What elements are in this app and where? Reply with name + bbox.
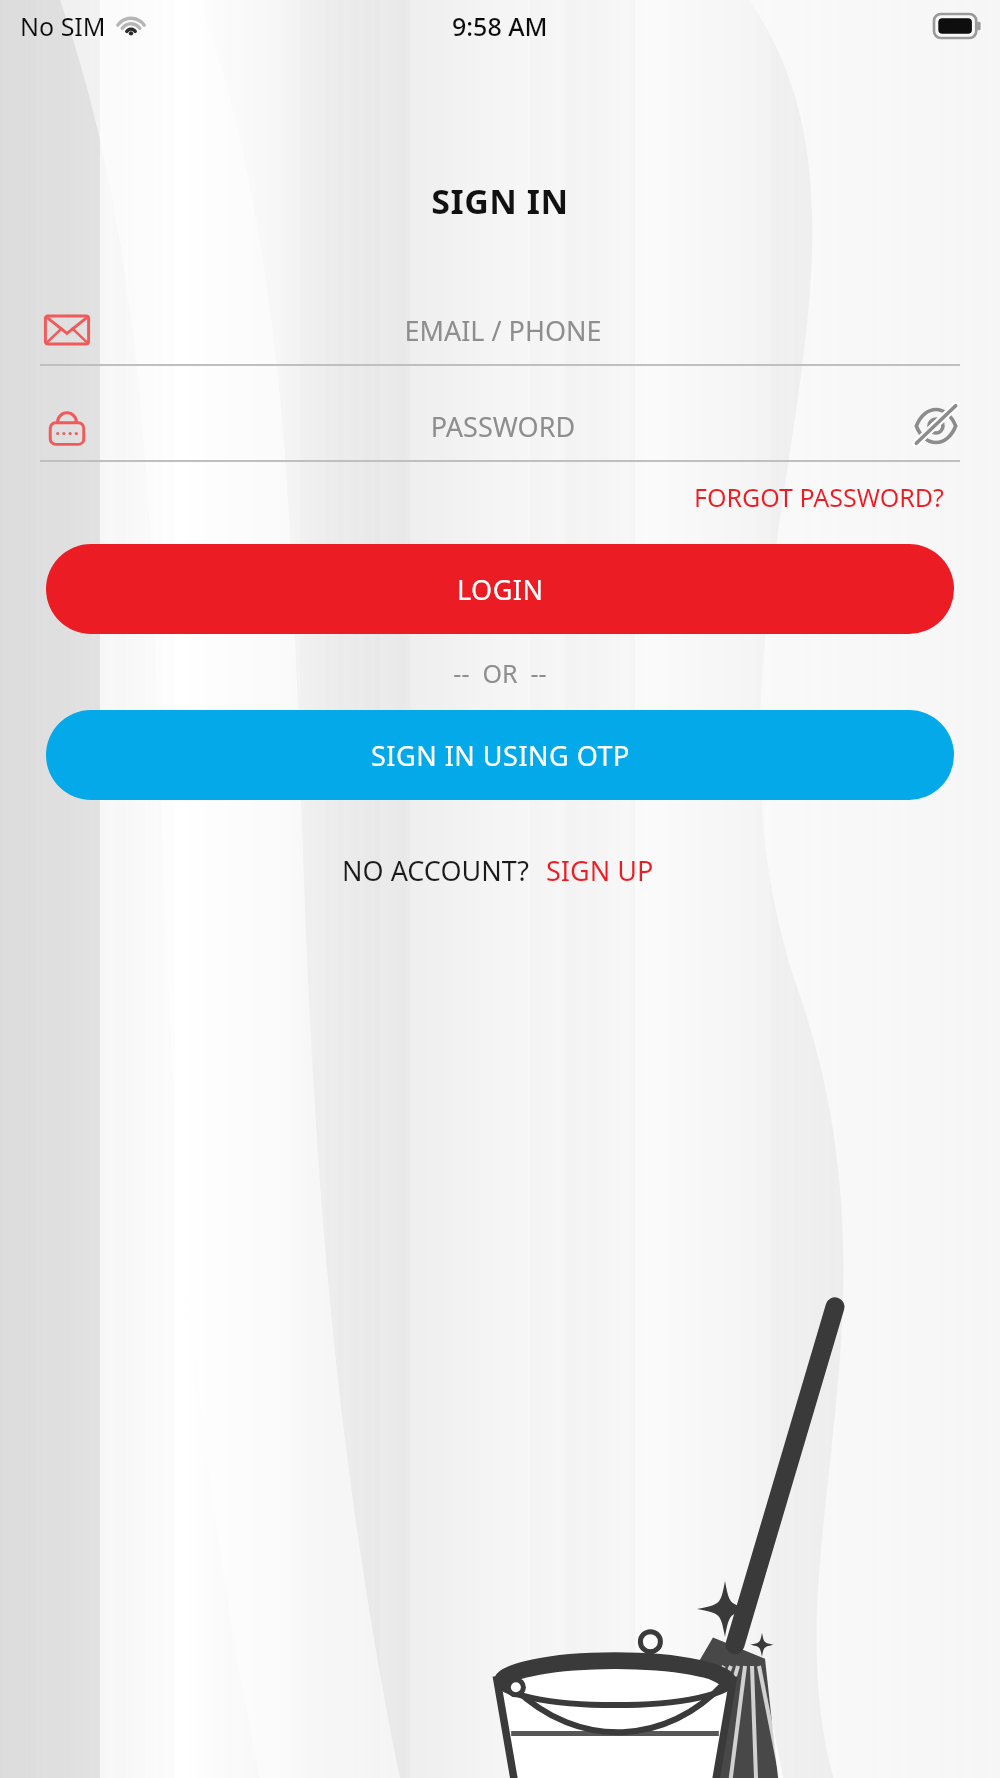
staticText: PASSWORD: [94, 408, 912, 445]
staticText: 9:58 AM: [452, 9, 548, 43]
staticText: NO ACCOUNT?: [342, 852, 530, 889]
button[interactable]: Password: [40, 392, 960, 462]
button[interactable]: SIGN UP: [542, 848, 658, 893]
staticText: No SIM: [20, 9, 106, 43]
staticText: EMAIL / PHONE: [94, 312, 912, 349]
staticText: LOGIN: [457, 571, 544, 608]
other: Password: [40, 399, 94, 453]
button[interactable]: Show password: [912, 402, 960, 450]
button[interactable]: Email: [40, 296, 960, 366]
button[interactable]: SIGN IN USING OTP: [46, 710, 954, 800]
staticText: SIGN UP: [546, 852, 654, 889]
button[interactable]: FORGOT PASSWORD?: [690, 476, 948, 518]
staticText: SIGN IN USING OTP: [371, 737, 630, 774]
staticText: FORGOT PASSWORD?: [694, 480, 944, 514]
button[interactable]: LOGIN: [46, 544, 954, 634]
other: Email: [40, 303, 94, 357]
staticText: SIGN IN: [0, 178, 1000, 224]
staticText: -- OR --: [0, 656, 1000, 690]
